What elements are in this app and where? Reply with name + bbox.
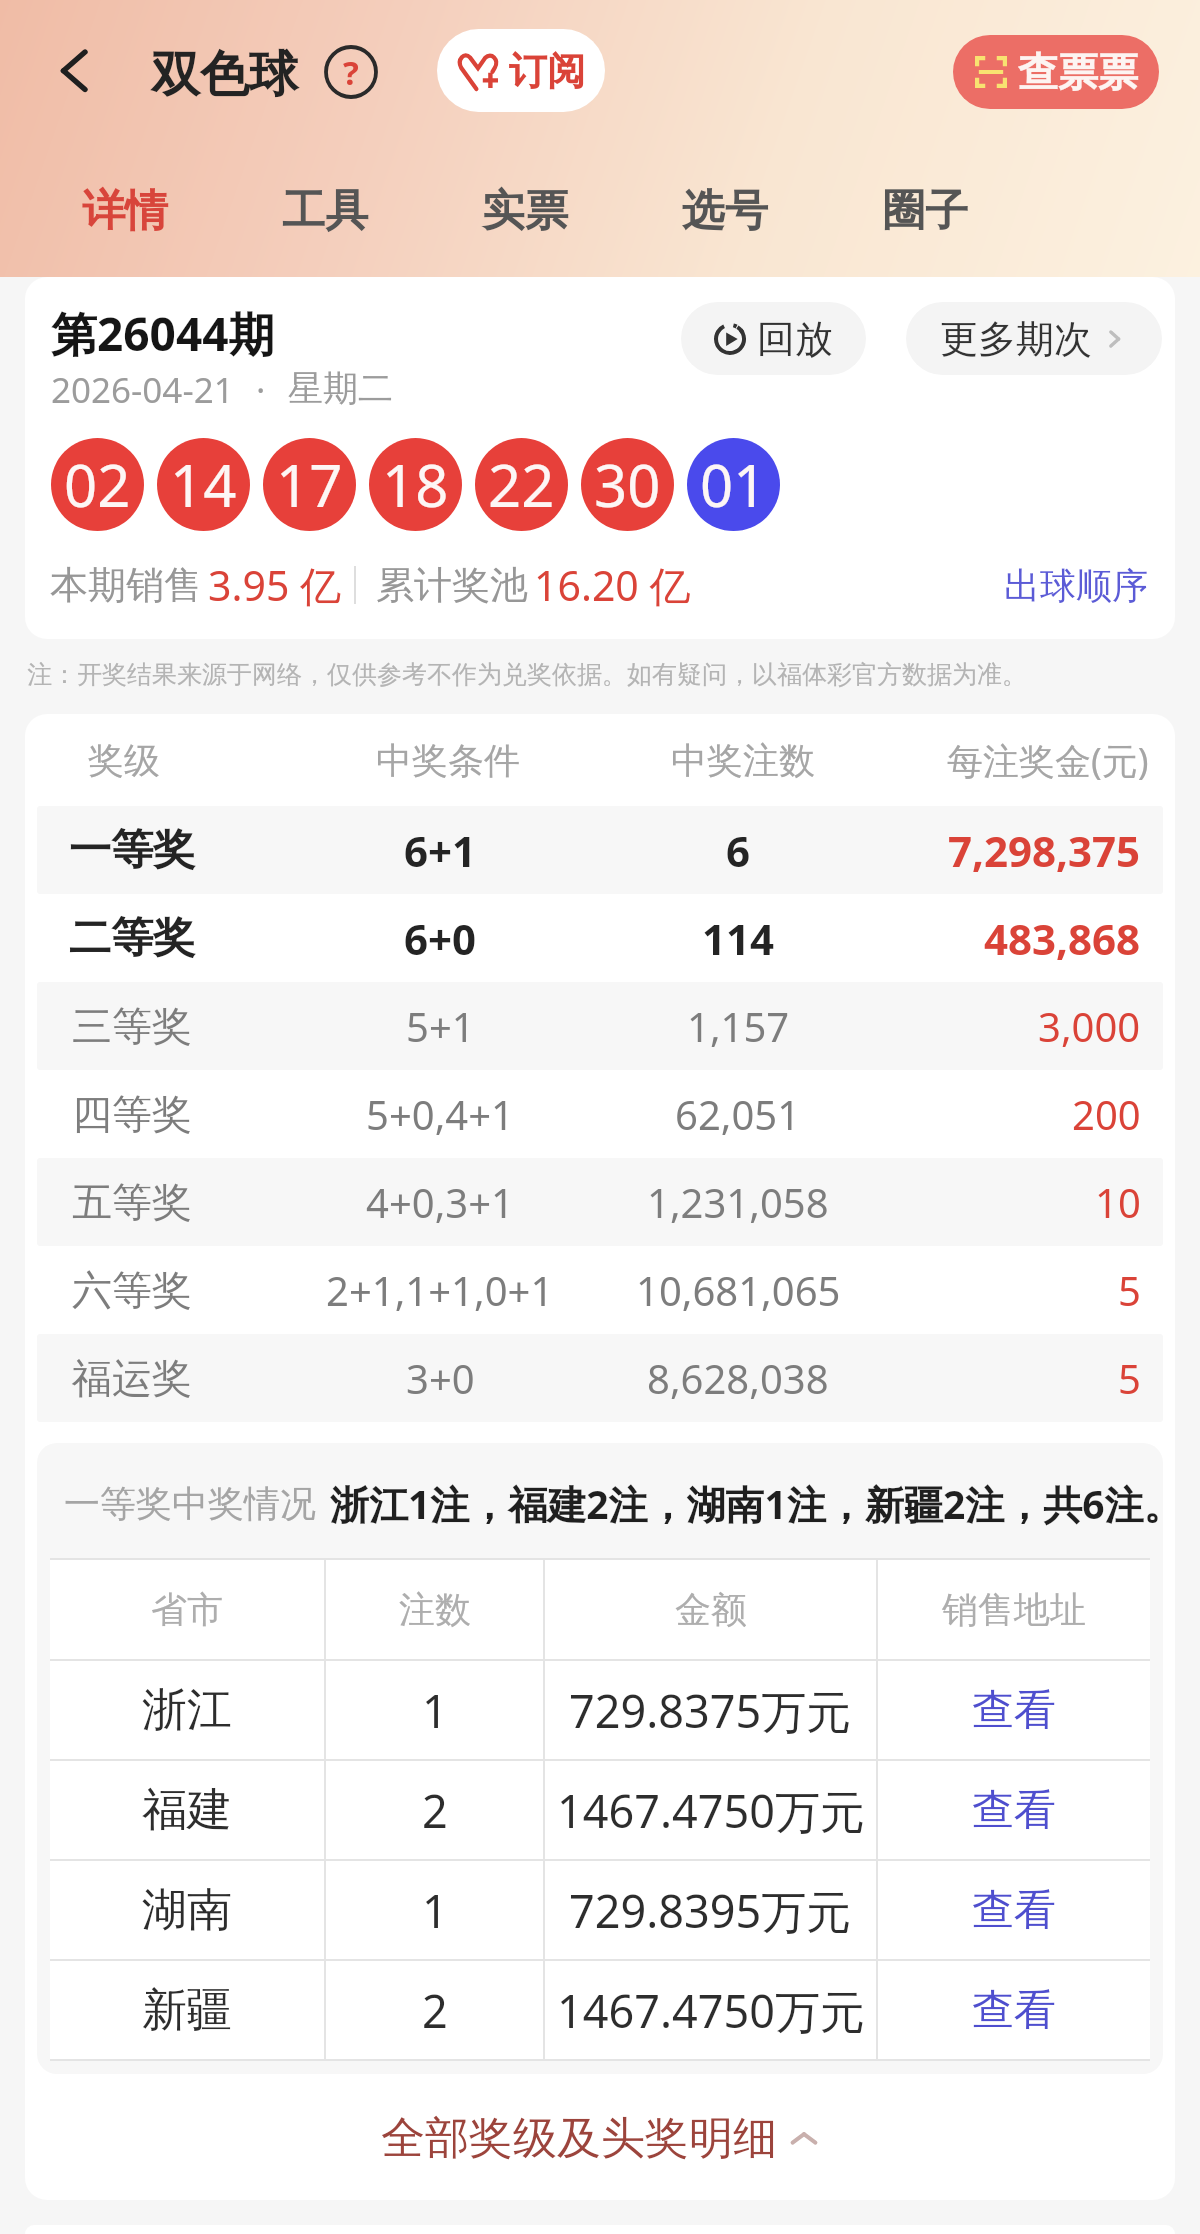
staticText: 浙江1注，福建2注，湖南1注，新疆2注，共6注。	[330, 1477, 1163, 1530]
staticText: 注：开奖结果来源于网络，仅供参考不作为兑奖依据。如有疑问，以福体彩官方数据为准。	[27, 659, 1027, 690]
staticText: 实票	[482, 184, 568, 238]
staticText: 8,628,038	[647, 1351, 829, 1405]
staticText: 详情	[82, 184, 168, 238]
staticText: 1	[422, 1680, 448, 1741]
staticText: ·	[256, 366, 266, 414]
staticText: 四等奖	[72, 1089, 192, 1139]
staticText: 一等奖	[69, 824, 195, 877]
staticText: 10,681,065	[636, 1263, 841, 1317]
staticText: 全部奖级及头奖明细	[381, 2111, 777, 2166]
staticText: 选号	[682, 184, 768, 238]
staticText: 回放	[757, 315, 833, 363]
staticText: 湖南	[142, 1882, 232, 1939]
staticText: 工具	[282, 184, 368, 238]
staticText: 114	[702, 910, 775, 967]
staticText: 3+0	[406, 1351, 475, 1405]
staticText: 圈子	[882, 184, 968, 238]
staticText: 1467.4750万元	[557, 1780, 865, 1841]
staticText: 查票票	[1018, 47, 1138, 97]
staticText: 星期二	[288, 366, 393, 410]
staticText: 3,000	[1038, 999, 1141, 1053]
staticText: 4+0,3+1	[366, 1175, 514, 1229]
staticText: 10	[1095, 1175, 1141, 1229]
button[interactable]: Help	[324, 45, 378, 99]
button[interactable]: Back	[49, 45, 99, 95]
staticText: 累计奖池	[376, 561, 528, 609]
staticText: 浙江	[142, 1682, 232, 1739]
staticText: 2	[422, 1980, 448, 2041]
staticText: 22	[488, 445, 555, 524]
staticText: ?	[343, 50, 359, 95]
staticText: 30	[594, 445, 661, 524]
button[interactable]: 工具	[225, 140, 425, 277]
staticText: 更多期次	[940, 315, 1092, 363]
button[interactable]: 详情	[25, 140, 225, 277]
staticText: 二等奖	[69, 912, 195, 965]
staticText: 6+1	[404, 822, 477, 879]
staticText: 729.8395万元	[569, 1880, 852, 1941]
staticText: 5+0,4+1	[366, 1087, 514, 1141]
staticText: 销售地址	[942, 1587, 1086, 1632]
button[interactable]: 实票	[425, 140, 625, 277]
button[interactable]: 查看	[972, 1884, 1056, 1937]
staticText: 第26044期	[51, 302, 275, 365]
staticText: 金额	[675, 1587, 747, 1632]
staticText: 双色球	[151, 44, 298, 106]
staticText: 6+0	[404, 910, 477, 967]
button[interactable]: 查看	[972, 1984, 1056, 2037]
staticText: 新疆	[142, 1982, 232, 2039]
staticText: 三等奖	[72, 1001, 192, 1051]
staticText: 1,157	[687, 999, 790, 1053]
button[interactable]: 选号	[625, 140, 825, 277]
button[interactable]: 订阅	[437, 29, 605, 112]
staticText: 729.8375万元	[569, 1680, 852, 1741]
button[interactable]: 圈子	[825, 140, 1025, 277]
staticText: 出球顺序	[1004, 563, 1148, 608]
button[interactable]: 全部奖级及头奖明细	[25, 2111, 1175, 2166]
staticText: 查看	[972, 1984, 1056, 2037]
staticText: 1	[422, 1880, 448, 1941]
staticText: 62,051	[675, 1087, 801, 1141]
staticText: 福建	[142, 1782, 232, 1839]
staticText: 17	[276, 445, 343, 524]
staticText: 2	[422, 1780, 448, 1841]
button[interactable]: 查看	[972, 1784, 1056, 1837]
staticText: 六等奖	[72, 1265, 192, 1315]
button[interactable]: 更多期次	[906, 302, 1162, 375]
staticText: 6	[726, 822, 751, 879]
staticText: 查看	[972, 1884, 1056, 1937]
staticText: 2026-04-21	[51, 366, 234, 414]
staticText: 200	[1072, 1087, 1141, 1141]
staticText: 中奖条件	[376, 738, 520, 783]
staticText: 1467.4750万元	[557, 1980, 865, 2041]
staticText: 1,231,058	[647, 1175, 829, 1229]
staticText: 7,298,375	[948, 822, 1141, 879]
staticText: 中奖注数	[671, 738, 815, 783]
staticText: 订阅	[509, 47, 585, 95]
staticText: 483,868	[984, 910, 1141, 967]
button[interactable]: 查看	[972, 1684, 1056, 1737]
staticText: 查看	[972, 1784, 1056, 1837]
staticText: 02	[64, 445, 131, 524]
staticText: 3.95 亿	[208, 557, 342, 613]
staticText: 省市	[151, 1587, 223, 1632]
staticText: 福运奖	[72, 1353, 192, 1403]
staticText: 01	[700, 445, 767, 524]
staticText: 5+1	[406, 999, 475, 1053]
staticText: 2+1,1+1,0+1	[326, 1263, 554, 1317]
button[interactable]: 查票票	[953, 35, 1159, 109]
staticText: 注数	[399, 1587, 471, 1632]
staticText: 18	[382, 445, 449, 524]
staticText: 14	[170, 445, 237, 524]
button[interactable]: 出球顺序	[1004, 563, 1148, 608]
button[interactable]: 回放	[681, 302, 866, 375]
staticText: 奖级	[88, 738, 160, 783]
staticText: 五等奖	[72, 1177, 192, 1227]
staticText: 查看	[972, 1684, 1056, 1737]
staticText: 本期销售	[50, 561, 202, 609]
staticText: 16.20 亿	[534, 557, 691, 613]
staticText: 一等奖中奖情况	[64, 1481, 316, 1526]
staticText: 5	[1118, 1351, 1141, 1405]
staticText: 每注奖金(元)	[947, 736, 1149, 785]
staticText: 5	[1118, 1263, 1141, 1317]
